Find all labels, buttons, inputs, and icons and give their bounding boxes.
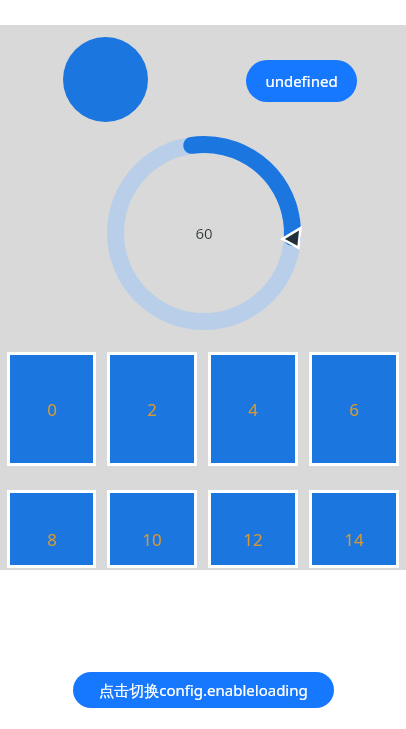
staticText: 0 (47, 398, 57, 421)
button[interactable]: 10 (110, 493, 194, 565)
button[interactable]: 12 (211, 493, 295, 565)
staticText: 12 (243, 528, 263, 551)
staticText: 6 (349, 398, 359, 421)
staticText: 10 (142, 528, 162, 551)
button[interactable]: 6 (312, 355, 396, 463)
button[interactable]: 14 (312, 493, 396, 565)
button[interactable]: 0 (10, 355, 93, 463)
button[interactable]: Blue circle avatar (63, 37, 148, 122)
staticText: 2 (147, 398, 157, 421)
staticText: 60 (195, 223, 213, 243)
button[interactable]: 4 (211, 355, 295, 463)
button[interactable]: 2 (110, 355, 194, 463)
staticText: 点击切换config.enableloading (99, 680, 308, 700)
button[interactable]: 8 (10, 493, 93, 565)
staticText: 8 (47, 528, 57, 551)
button[interactable]: 点击切换config.enableloading (73, 672, 334, 708)
staticText: 4 (248, 398, 258, 421)
staticText: 14 (344, 528, 364, 551)
staticText: undefined (265, 71, 338, 91)
button[interactable]: undefined (246, 60, 357, 102)
